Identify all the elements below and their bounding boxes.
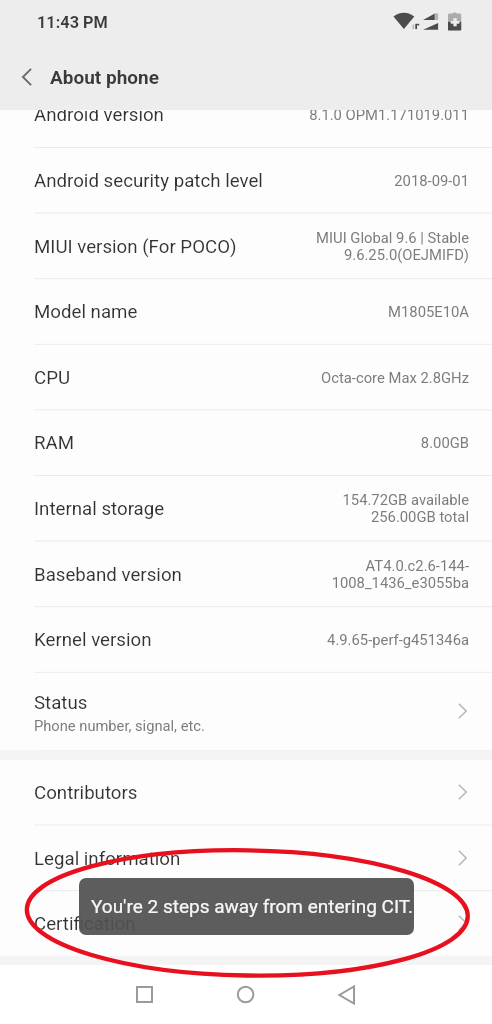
staticText: AT4.0.c2.6-144- 1008_1436_e3055ba [331, 557, 469, 592]
staticText: Internal storage [34, 498, 165, 520]
staticText: M1805E10A [388, 303, 469, 320]
staticText: Octa-core Max 2.8GHz [321, 369, 469, 386]
button[interactable]: Back [0, 44, 50, 110]
button[interactable]: Model name [0, 278, 492, 344]
staticText: 2018-09-01 [394, 172, 469, 189]
staticText: 154.72GB available 256.00GB total [342, 491, 469, 526]
staticText: Phone number, signal, etc. [34, 717, 205, 734]
staticText: CPU [34, 367, 71, 389]
button[interactable]: MIUI version (For POCO) [0, 213, 492, 279]
button[interactable]: Recent apps [119, 965, 171, 1024]
staticText: About phone [50, 66, 159, 88]
button[interactable]: Baseband version [0, 541, 492, 607]
button[interactable]: Kernel version [0, 606, 492, 672]
staticText: Contributors [34, 782, 138, 804]
staticText: MIUI Global 9.6 | Stable 9.6.25.0(OEJMIF… [316, 229, 469, 264]
button[interactable]: Legal information [0, 825, 492, 891]
staticText: RAM [34, 432, 75, 454]
staticText: Model name [34, 301, 138, 323]
button[interactable]: CPU [0, 344, 492, 410]
button[interactable]: Android security patch level [0, 147, 492, 213]
button[interactable]: Android version [0, 81, 492, 147]
button[interactable]: Internal storage [0, 475, 492, 541]
button[interactable]: RAM [0, 409, 492, 475]
staticText: 4.9.65-perf-g451346a [327, 631, 469, 648]
staticText: Kernel version [34, 629, 152, 651]
staticText: You're 2 steps away from entering CIT. [91, 895, 414, 917]
button[interactable]: Home [220, 965, 272, 1024]
staticText: 8.1.0 OPM1.171019.011 [309, 106, 469, 123]
staticText: Legal information [34, 848, 181, 870]
button[interactable]: Back [321, 965, 373, 1024]
staticText: MIUI version (For POCO) [34, 236, 237, 258]
staticText: Baseband version [34, 564, 182, 586]
staticText: Android security patch level [34, 170, 263, 192]
staticText: 8.00GB [420, 434, 469, 451]
button[interactable]: Contributors [0, 760, 492, 824]
staticText: Android version [34, 104, 164, 126]
button[interactable]: Status [0, 672, 492, 750]
staticText: Certification [34, 913, 136, 935]
staticText: Status [34, 692, 88, 714]
button[interactable]: Certification [0, 890, 492, 956]
staticText: 11:43 PM [37, 13, 108, 32]
